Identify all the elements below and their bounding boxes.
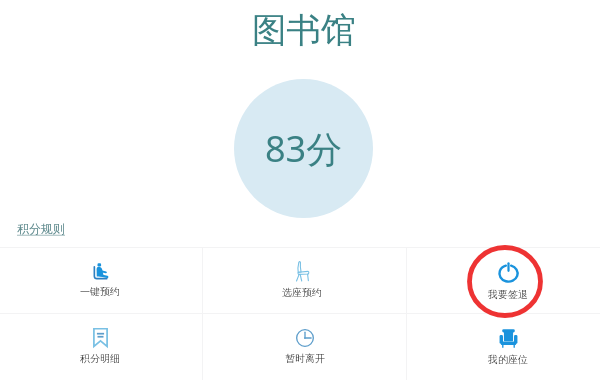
staticText: 一键预约	[80, 285, 120, 298]
staticText: 选座预约	[282, 286, 322, 299]
staticText: 积分规则	[17, 221, 65, 236]
button[interactable]: 选座预约	[203, 248, 406, 313]
button[interactable]: 积分明细	[0, 314, 202, 380]
staticText: 我的座位	[488, 353, 528, 366]
button[interactable]: 暂时离开	[203, 314, 406, 380]
button[interactable]: 一键预约	[0, 248, 202, 313]
button[interactable]: 积分规则	[17, 221, 65, 236]
button[interactable]: 我要签退	[407, 248, 600, 313]
button[interactable]: 我的座位	[407, 314, 600, 380]
staticText: 积分明细	[80, 352, 120, 365]
staticText: 图书馆	[252, 9, 356, 52]
staticText: 暂时离开	[285, 352, 325, 365]
staticText: 我要签退	[488, 288, 528, 301]
staticText: 83分	[265, 124, 343, 173]
